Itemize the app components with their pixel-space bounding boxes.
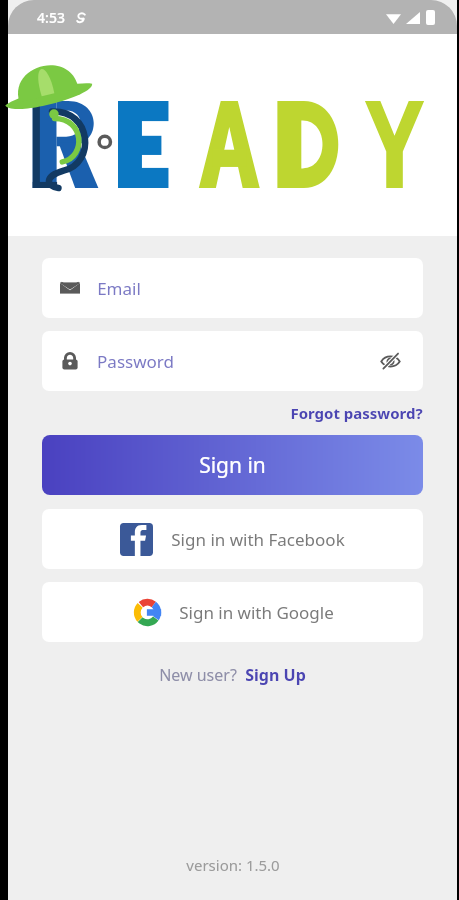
staticText: Sign in with Google: [179, 601, 334, 624]
staticText: version: 1.5.0: [186, 855, 280, 875]
staticText: Password: [97, 350, 174, 373]
button[interactable]: Sign in with Facebook: [42, 509, 423, 569]
button[interactable]: Forgot password?: [290, 401, 423, 425]
staticText: Forgot password?: [290, 403, 423, 423]
staticText: New user?: [159, 664, 237, 686]
staticText: Sign Up: [245, 664, 306, 686]
button[interactable]: Sign Up: [245, 664, 306, 686]
button[interactable]: Email: [42, 258, 423, 318]
button[interactable]: Password: [42, 331, 423, 391]
button[interactable]: Sign in with Google: [42, 582, 423, 642]
staticText: Sign in: [199, 451, 266, 480]
staticText: 4:53: [37, 8, 65, 27]
staticText: Email: [97, 277, 141, 300]
button[interactable]: Sign in: [42, 435, 423, 495]
button[interactable]: Show password: [375, 346, 405, 376]
staticText: Sign in with Facebook: [171, 528, 345, 551]
